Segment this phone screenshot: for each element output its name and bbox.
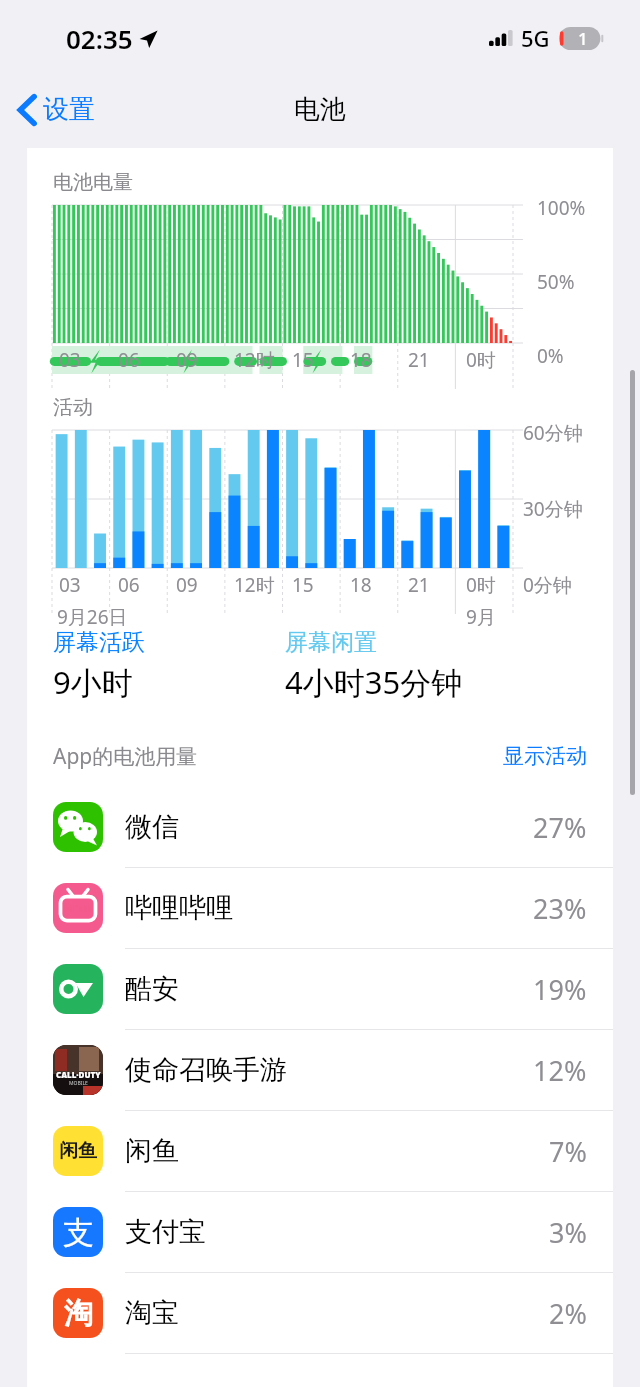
staticText: 电池: [294, 93, 346, 126]
staticText: 闲鱼: [59, 1139, 97, 1163]
staticText: 闲鱼: [125, 1134, 179, 1168]
staticText: 使命召唤手游: [125, 1053, 287, 1087]
staticText: MOBILE: [69, 1080, 88, 1087]
staticText: 0时: [466, 572, 496, 598]
button[interactable]: bilibili: [27, 868, 613, 948]
staticText: 03: [59, 347, 81, 373]
staticText: 设置: [43, 93, 95, 126]
staticText: 03: [59, 572, 81, 598]
staticText: 0时: [466, 347, 496, 373]
staticText: 100%: [537, 195, 586, 221]
staticText: 0分钟: [523, 572, 572, 598]
staticText: 1: [578, 27, 588, 50]
staticText: CALL·DUTY: [56, 1069, 101, 1080]
staticText: 23%: [533, 890, 587, 927]
staticText: 12%: [533, 1052, 587, 1089]
staticText: 18: [350, 347, 372, 373]
button[interactable]: 微信: [27, 787, 613, 867]
staticText: 15: [292, 572, 314, 598]
staticText: 2%: [549, 1295, 587, 1332]
staticText: 3%: [549, 1214, 587, 1251]
button[interactable]: 淘: [27, 1273, 613, 1353]
staticText: 淘宝: [125, 1296, 179, 1330]
staticText: 屏幕活跃: [53, 628, 145, 657]
button[interactable]: 闲鱼: [27, 1111, 613, 1191]
staticText: 酷安: [125, 972, 179, 1006]
staticText: 支付宝: [125, 1215, 206, 1249]
staticText: 显示活动: [503, 743, 587, 769]
staticText: 7%: [549, 1133, 587, 1170]
staticText: 18: [350, 572, 372, 598]
staticText: 06: [118, 347, 140, 373]
staticText: 12时: [234, 572, 275, 598]
staticText: 0%: [537, 343, 564, 369]
staticText: 淘: [64, 1295, 93, 1332]
staticText: App的电池用量: [53, 742, 198, 771]
staticText: 电池电量: [53, 170, 133, 195]
staticText: 50%: [537, 269, 575, 295]
staticText: 5G: [521, 23, 550, 53]
staticText: 09: [176, 572, 198, 598]
staticText: 19%: [533, 971, 587, 1008]
staticText: 12时: [234, 347, 275, 373]
button[interactable]: 设置: [0, 85, 109, 134]
staticText: 21: [408, 347, 430, 373]
button[interactable]: CALL·DUTY: [27, 1030, 613, 1110]
staticText: 02:35: [66, 21, 133, 56]
staticText: 4小时35分钟: [285, 661, 463, 703]
staticText: 9小时: [53, 661, 133, 703]
staticText: 哔哩哔哩: [125, 891, 233, 925]
button[interactable]: 支: [27, 1192, 613, 1272]
staticText: 屏幕闲置: [285, 628, 377, 657]
staticText: 支: [63, 1213, 94, 1252]
staticText: 15: [292, 347, 314, 373]
staticText: 9月27日: [466, 604, 517, 626]
button[interactable]: 酷安: [27, 949, 613, 1029]
staticText: 60分钟: [523, 420, 583, 446]
button[interactable]: 显示活动: [499, 739, 591, 773]
staticText: 21: [408, 572, 430, 598]
staticText: 活动: [53, 395, 93, 420]
staticText: 06: [118, 572, 140, 598]
staticText: 09: [176, 347, 198, 373]
staticText: 30分钟: [523, 496, 583, 522]
staticText: 微信: [125, 810, 179, 844]
staticText: 9月26日: [57, 604, 128, 626]
staticText: 27%: [533, 809, 587, 846]
